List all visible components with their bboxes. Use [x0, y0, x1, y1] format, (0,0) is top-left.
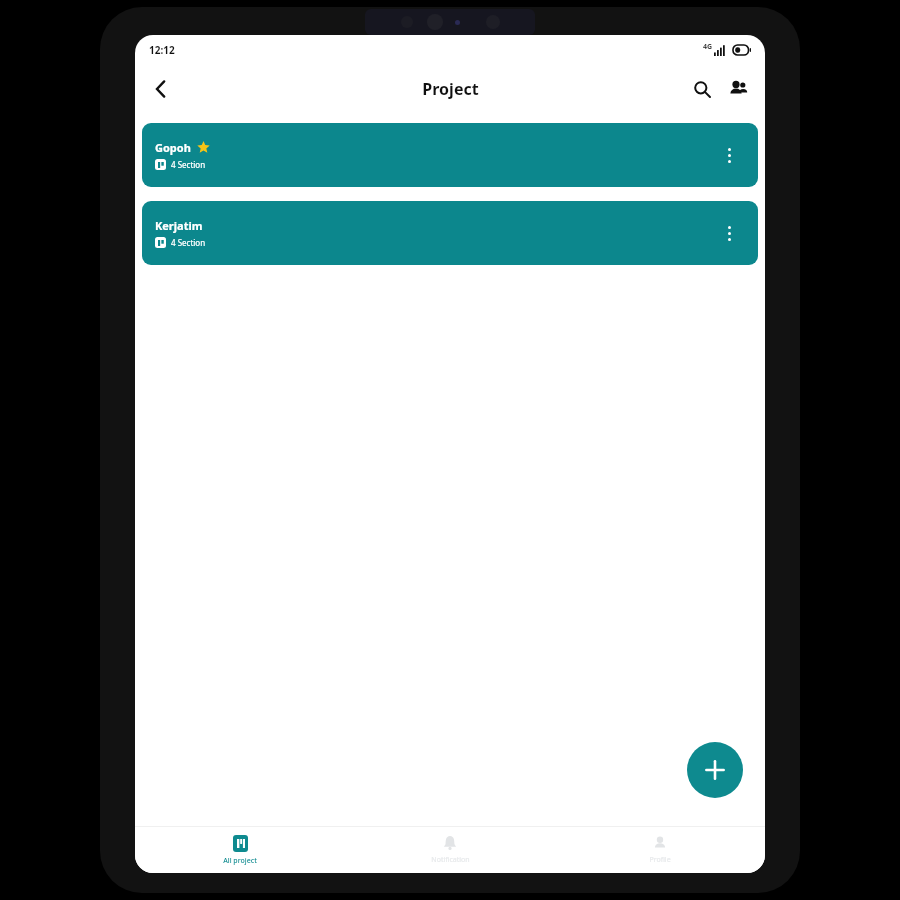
button[interactable]: Notification [345, 831, 555, 869]
button[interactable]: Profile [555, 831, 765, 869]
staticText: 4G [703, 42, 713, 52]
staticText: Gopoh [155, 140, 191, 155]
staticText: Profile [649, 855, 671, 865]
button[interactable]: All project [135, 831, 345, 870]
staticText: 4 Section [171, 159, 206, 170]
button[interactable]: More options [714, 140, 744, 170]
button[interactable]: More options [714, 218, 744, 248]
button[interactable]: Members [721, 72, 755, 106]
button[interactable]: Search [685, 72, 719, 106]
staticText: Kerjatim [155, 218, 203, 233]
staticText: All project [223, 856, 257, 866]
button[interactable]: Back [141, 69, 181, 109]
button[interactable]: Kerjatim [142, 201, 758, 265]
staticText: 4 Section [171, 237, 206, 248]
button[interactable]: Add project [687, 742, 743, 798]
button[interactable]: Gopoh [142, 123, 758, 187]
staticText: Notification [431, 855, 470, 865]
staticText: Project [422, 78, 479, 100]
staticText: 12:12 [149, 43, 175, 57]
